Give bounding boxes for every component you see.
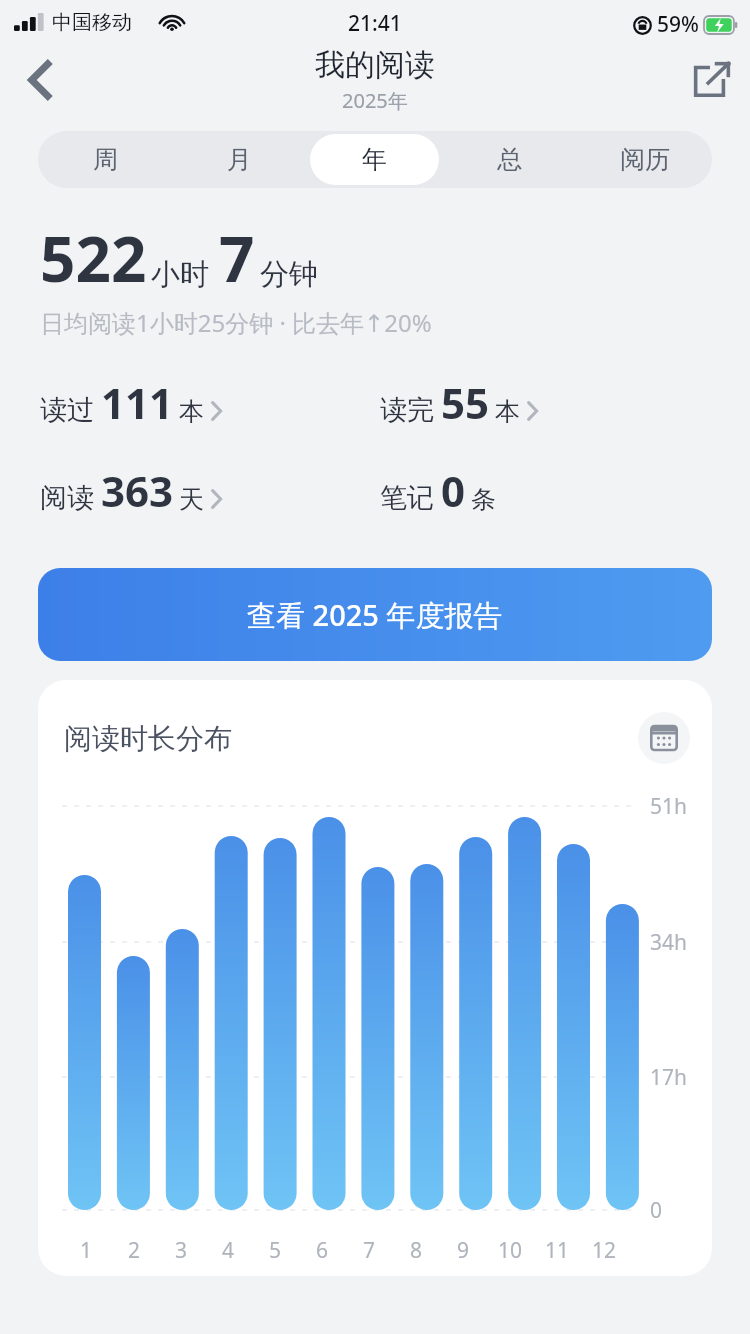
staticText: 0 bbox=[650, 1196, 663, 1225]
staticText: 分钟 bbox=[260, 256, 318, 293]
staticText: 34h bbox=[650, 928, 688, 957]
button[interactable]: 读过 bbox=[40, 372, 223, 433]
staticText: 本 bbox=[179, 396, 204, 427]
button[interactable]: 笔记 bbox=[380, 460, 496, 521]
button[interactable]: 阅读 bbox=[40, 460, 223, 521]
staticText: 查看 2025 年度报告 bbox=[247, 595, 503, 635]
staticText: 小时 bbox=[151, 256, 209, 293]
staticText: 笔记 bbox=[380, 481, 434, 515]
staticText: 12 bbox=[592, 1236, 617, 1265]
staticText: 7 bbox=[363, 1236, 376, 1265]
staticText: 中国移动 bbox=[52, 10, 132, 35]
staticText: 59% bbox=[657, 10, 699, 39]
staticText: 阅读 bbox=[40, 481, 94, 515]
staticText: 读完 bbox=[380, 393, 434, 427]
staticText: 读过 bbox=[40, 393, 94, 427]
staticText: 3 bbox=[175, 1236, 188, 1265]
staticText: 年 bbox=[362, 144, 387, 175]
staticText: 8 bbox=[410, 1236, 423, 1265]
button[interactable]: 年 bbox=[310, 134, 439, 185]
staticText: 6 bbox=[316, 1236, 329, 1265]
staticText: 9 bbox=[457, 1236, 470, 1265]
staticText: 11 bbox=[545, 1236, 570, 1265]
staticText: 周 bbox=[93, 144, 118, 175]
staticText: 阅历 bbox=[620, 144, 670, 175]
staticText: 本 bbox=[495, 396, 520, 427]
staticText: 2 bbox=[128, 1236, 141, 1265]
staticText: 月 bbox=[227, 144, 252, 175]
staticText: 2025年 bbox=[342, 87, 408, 114]
button[interactable]: Calendar bbox=[638, 712, 690, 764]
staticText: 4 bbox=[222, 1236, 235, 1265]
button[interactable]: 阅历 bbox=[580, 134, 709, 185]
staticText: 111 bbox=[101, 374, 174, 431]
button[interactable]: Share bbox=[680, 48, 744, 112]
staticText: 阅读时长分布 bbox=[64, 721, 232, 756]
staticText: 7 bbox=[219, 216, 255, 300]
button[interactable]: 月 bbox=[175, 134, 304, 185]
button[interactable]: Back bbox=[8, 48, 72, 112]
button[interactable]: 周 bbox=[41, 134, 169, 185]
staticText: 55 bbox=[441, 374, 490, 431]
staticText: 1 bbox=[80, 1236, 93, 1265]
staticText: 总 bbox=[497, 144, 522, 175]
staticText: 5 bbox=[269, 1236, 282, 1265]
staticText: 天 bbox=[179, 484, 204, 515]
button[interactable]: 读完 bbox=[380, 372, 539, 433]
staticText: 522 bbox=[40, 216, 147, 300]
button[interactable]: 查看 2025 年度报告 bbox=[38, 568, 712, 661]
staticText: 日均阅读1小时25分钟 · 比去年↑20% bbox=[40, 306, 432, 339]
staticText: 363 bbox=[101, 462, 174, 519]
staticText: 我的阅读 bbox=[315, 46, 435, 84]
staticText: 17h bbox=[650, 1063, 688, 1092]
staticText: 21:41 bbox=[348, 9, 402, 38]
staticText: 0 bbox=[441, 462, 466, 519]
staticText: 条 bbox=[471, 484, 496, 515]
button[interactable]: 总 bbox=[445, 134, 574, 185]
staticText: 51h bbox=[650, 792, 688, 821]
staticText: 10 bbox=[498, 1236, 523, 1265]
